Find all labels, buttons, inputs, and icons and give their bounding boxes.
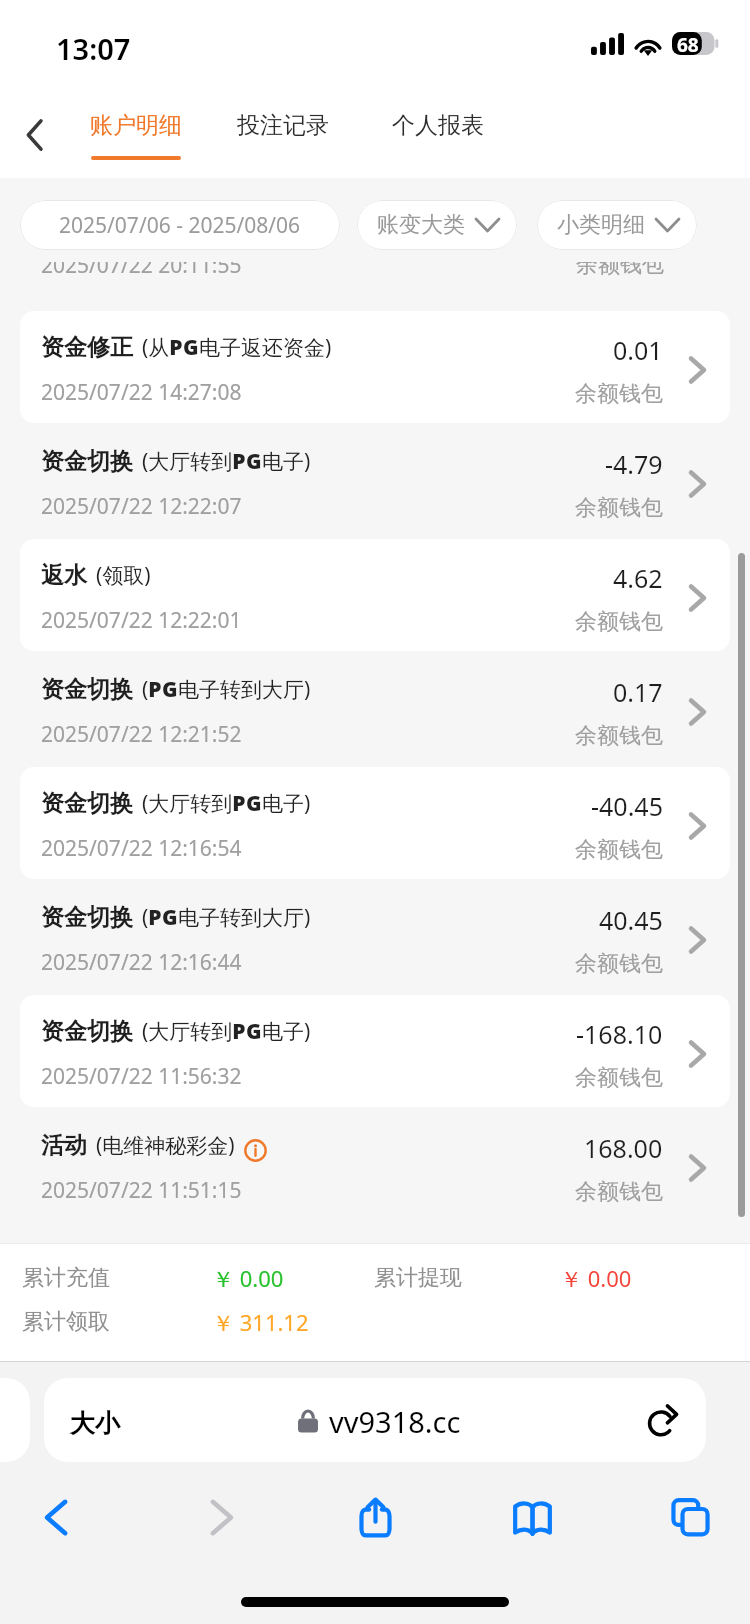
button[interactable]: 资金切换: [20, 995, 730, 1107]
button[interactable]: Tabs: [658, 1485, 722, 1549]
button[interactable]: Back: [6, 107, 62, 163]
staticText: 2025/07/22 12:22:01: [41, 606, 242, 635]
button[interactable]: 资金切换: [20, 767, 730, 879]
staticText: (领取): [96, 561, 151, 590]
button[interactable]: Reload: [640, 1397, 686, 1443]
staticText: 2025/07/22 12:16:54: [41, 834, 242, 863]
staticText: -4.79: [605, 447, 663, 481]
staticText: ￥ 311.12: [212, 1307, 309, 1337]
staticText: 余额钱包: [575, 722, 663, 750]
button[interactable]: 投注记录: [235, 111, 331, 160]
button[interactable]: 资金切换: [0, 424, 750, 538]
button[interactable]: 资金切换: [0, 880, 750, 994]
staticText: 账变大类: [377, 211, 465, 239]
button[interactable]: Previous tab: [0, 1378, 30, 1462]
button[interactable]: 活动: [0, 1108, 750, 1222]
staticText: (从PG电子返还资金): [142, 333, 332, 362]
staticText: 168.00: [584, 1131, 663, 1165]
button[interactable]: 小类明细: [537, 200, 697, 250]
staticText: ￥ 0.00: [560, 1263, 632, 1293]
staticText: 余额钱包: [575, 836, 663, 864]
staticText: 小类明细: [557, 211, 645, 239]
staticText: 累计充值: [22, 1264, 110, 1292]
button[interactable]: 返水: [20, 539, 730, 651]
staticText: (PG电子转到大厅): [142, 675, 311, 704]
staticText: 0.01: [613, 333, 663, 367]
staticText: 余额钱包: [575, 1064, 663, 1092]
staticText: 活动: [41, 1131, 87, 1160]
button[interactable]: Back: [25, 1485, 89, 1549]
staticText: 资金切换: [41, 903, 133, 932]
staticText: 40.45: [599, 903, 663, 937]
staticText: 0.17: [613, 675, 663, 709]
staticText: 68: [677, 32, 699, 55]
button[interactable]: Forward: [188, 1485, 252, 1549]
staticText: 2025/07/22 14:27:08: [41, 378, 242, 407]
staticText: ￥ 0.00: [212, 1263, 284, 1293]
staticText: (PG电子转到大厅): [142, 903, 311, 932]
staticText: 2025/07/22 11:56:32: [41, 1062, 242, 1091]
button[interactable]: Share: [343, 1485, 407, 1549]
staticText: 投注记录: [237, 111, 329, 140]
staticText: 2025/07/22 12:21:52: [41, 720, 242, 749]
staticText: 2025/07/06 - 2025/08/06: [59, 211, 301, 240]
staticText: 2025/07/22 11:51:15: [41, 1176, 242, 1205]
staticText: 4.62: [613, 561, 663, 595]
staticText: 余额钱包: [576, 262, 664, 279]
staticText: 资金切换: [41, 675, 133, 704]
staticText: 累计领取: [22, 1308, 110, 1336]
staticText: 2025/07/22 20:11:55: [41, 262, 242, 280]
button[interactable]: 资金切换: [0, 652, 750, 766]
staticText: (电维神秘彩金): [96, 1131, 235, 1160]
staticText: 返水: [41, 561, 87, 590]
staticText: 大小: [70, 1408, 120, 1439]
staticText: 余额钱包: [575, 1178, 663, 1206]
button[interactable]: 大小: [44, 1378, 706, 1462]
staticText: 账户明细: [90, 111, 182, 140]
staticText: (大厅转到PG电子): [142, 1017, 311, 1046]
staticText: 资金切换: [41, 447, 133, 476]
staticText: vv9318.cc: [329, 1402, 461, 1441]
staticText: -168.10: [576, 1017, 663, 1051]
staticText: 2025/07/22 12:22:07: [41, 492, 242, 521]
staticText: 13:07: [56, 29, 131, 68]
button[interactable]: 账户明细: [88, 111, 184, 160]
staticText: 累计提现: [374, 1264, 462, 1292]
staticText: 2025/07/22 12:16:44: [41, 948, 242, 977]
staticText: (大厅转到PG电子): [142, 447, 311, 476]
staticText: -40.45: [591, 789, 663, 823]
staticText: 资金修正: [41, 333, 133, 362]
staticText: 余额钱包: [575, 380, 663, 408]
button[interactable]: 资金修正: [20, 311, 730, 423]
staticText: 资金切换: [41, 1017, 133, 1046]
staticText: 个人报表: [392, 111, 484, 140]
staticText: 余额钱包: [575, 494, 663, 522]
button[interactable]: 2025/07/06 - 2025/08/06: [20, 200, 340, 250]
button[interactable]: Bookmarks: [500, 1485, 564, 1549]
button[interactable]: 账变大类: [357, 200, 517, 250]
staticText: 余额钱包: [575, 608, 663, 636]
staticText: 资金切换: [41, 789, 133, 818]
staticText: (大厅转到PG电子): [142, 789, 311, 818]
button[interactable]: 个人报表: [390, 111, 486, 160]
staticText: 余额钱包: [575, 950, 663, 978]
